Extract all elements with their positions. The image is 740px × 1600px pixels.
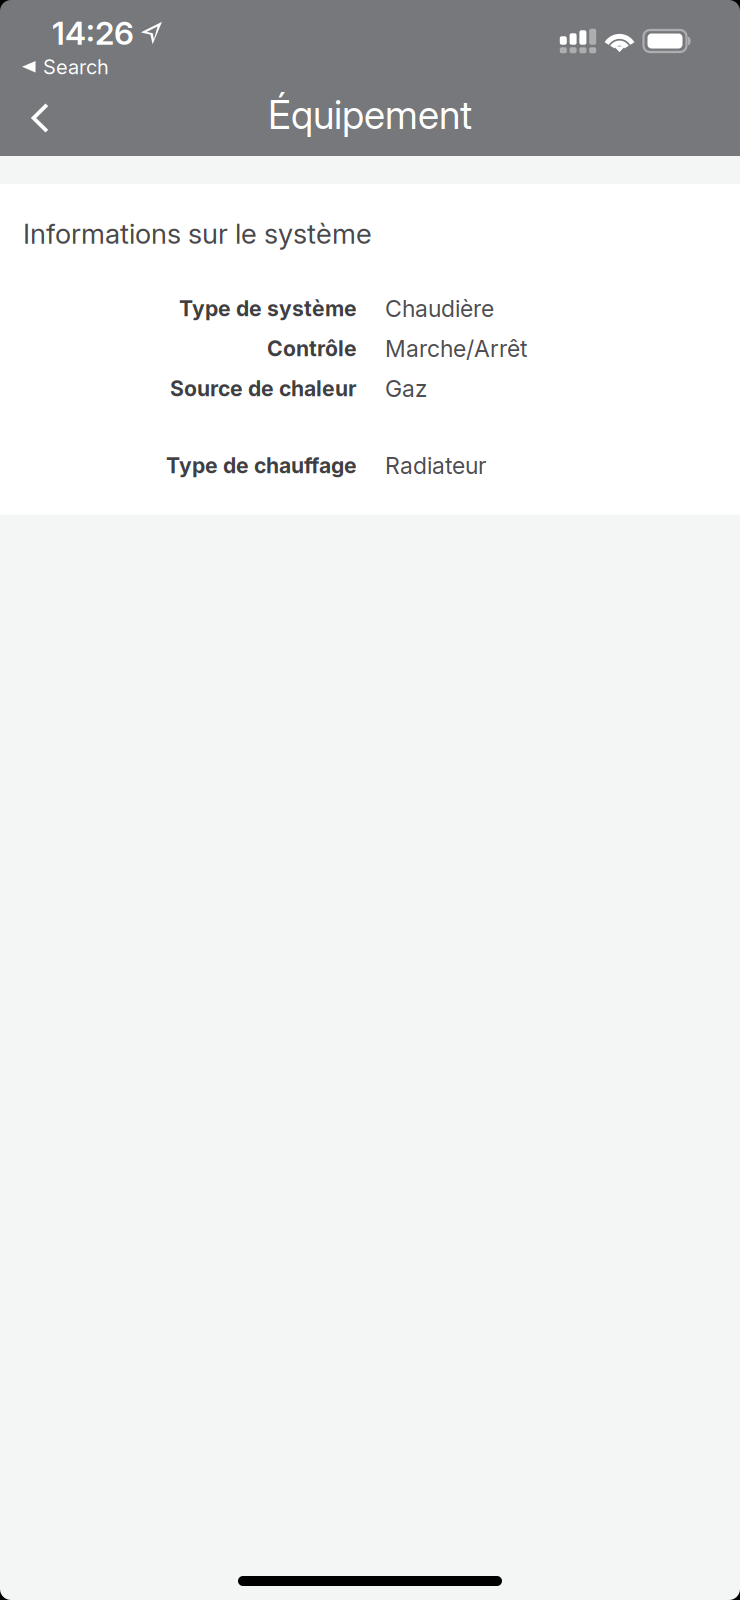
staticText: Source de chaleur <box>170 376 357 401</box>
staticText: Chaudière <box>385 295 494 322</box>
staticText: Type de système <box>179 296 357 321</box>
staticText: Search <box>43 55 109 79</box>
button[interactable]: Search <box>0 54 740 80</box>
staticText: Marche/Arrêt <box>385 335 527 362</box>
staticText: Équipement <box>268 92 472 138</box>
staticText: 14:26 <box>52 14 134 52</box>
staticText: Informations sur le système <box>23 217 372 251</box>
staticText: Contrôle <box>267 336 357 361</box>
button[interactable]: Back <box>0 83 69 153</box>
staticText: Type de chauffage <box>166 453 357 478</box>
staticText: Radiateur <box>385 452 486 479</box>
staticText: Gaz <box>385 375 427 402</box>
